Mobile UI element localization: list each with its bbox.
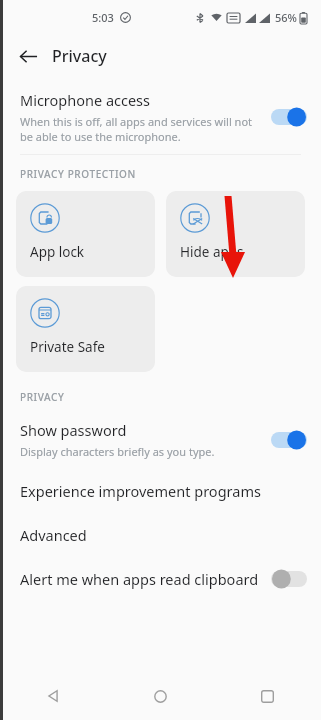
button[interactable]: Home bbox=[107, 672, 214, 720]
button[interactable]: Back bbox=[0, 672, 107, 720]
button[interactable]: Private Safe bbox=[16, 286, 155, 372]
staticText: When this is off, all apps and services … bbox=[20, 114, 259, 144]
button[interactable]: Show password bbox=[0, 414, 321, 469]
staticText: Alert me when apps read clipboard bbox=[20, 569, 259, 589]
staticText: Display characters briefly as you type. bbox=[20, 444, 215, 459]
button[interactable]: Microphone access bbox=[0, 78, 321, 154]
staticText: App lock bbox=[30, 243, 85, 261]
button[interactable]: Alert me when apps read clipboard bbox=[0, 557, 321, 601]
staticText: Private Safe bbox=[30, 338, 105, 356]
button[interactable]: Advanced bbox=[0, 513, 321, 557]
staticText: Experience improvement programs bbox=[20, 481, 261, 501]
staticText: Microphone access bbox=[20, 90, 151, 110]
button[interactable]: Toggle off bbox=[271, 569, 307, 589]
staticText: Show password bbox=[20, 420, 127, 440]
staticText: PRIVACY PROTECTION bbox=[20, 167, 136, 181]
staticText: PRIVACY bbox=[20, 390, 65, 404]
staticText: Advanced bbox=[20, 525, 87, 545]
button[interactable]: Hide apps bbox=[166, 191, 305, 277]
button[interactable]: Back bbox=[10, 38, 46, 74]
button[interactable]: Toggle on bbox=[271, 107, 307, 127]
staticText: 56% bbox=[275, 10, 297, 25]
button[interactable]: App lock bbox=[16, 191, 155, 277]
button[interactable]: Toggle on bbox=[271, 430, 307, 450]
button[interactable]: Recent apps bbox=[214, 672, 321, 720]
button[interactable]: Experience improvement programs bbox=[0, 469, 321, 513]
staticText: Privacy bbox=[52, 45, 107, 67]
staticText: Hide apps bbox=[180, 243, 244, 261]
staticText: 5:03 bbox=[92, 10, 114, 25]
